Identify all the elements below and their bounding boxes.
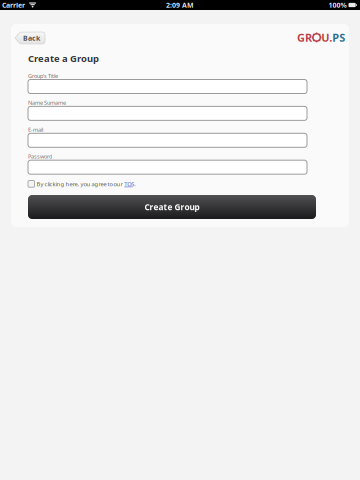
staticText: Carrier <box>2 0 25 10</box>
staticText: PS <box>332 30 345 45</box>
staticText: Create a Group <box>28 52 99 65</box>
staticText: E-mail <box>28 126 43 133</box>
staticText: 2:09 AM <box>166 0 194 10</box>
staticText: Create Group <box>144 201 199 213</box>
staticText: Name Surname <box>28 99 66 106</box>
staticText: TOS. <box>124 180 136 188</box>
staticText: Password <box>28 153 52 160</box>
button[interactable]: By clicking here, you agree to our <box>28 180 136 188</box>
staticText: GR <box>297 30 312 45</box>
staticText: U. <box>321 30 332 45</box>
staticText: By clicking here, you agree to our <box>37 180 123 188</box>
button[interactable]: Create Group <box>28 195 316 219</box>
staticText: Group's Title <box>28 72 58 79</box>
staticText: 100% <box>328 0 346 10</box>
staticText: Back <box>23 33 40 43</box>
button[interactable]: Back <box>15 32 45 44</box>
